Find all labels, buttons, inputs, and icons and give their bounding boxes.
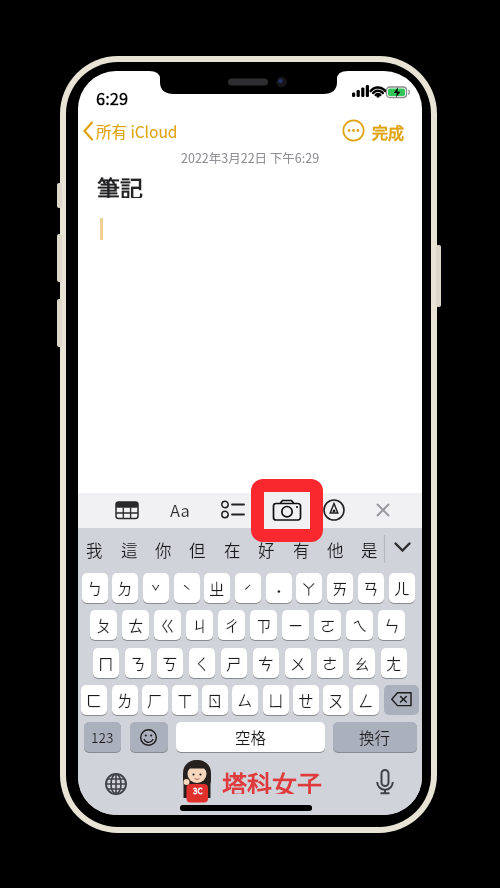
button[interactable]: ㄝ [293, 685, 319, 715]
button[interactable]: ㄐ [186, 610, 213, 640]
staticText: ㄌ [117, 689, 133, 711]
button[interactable] [376, 769, 394, 795]
button[interactable]: ˙ [266, 573, 292, 603]
button[interactable]: ㄈ [81, 685, 107, 715]
staticText: ㄍ [160, 614, 176, 636]
button[interactable] [323, 499, 345, 521]
staticText: ㄝ [298, 689, 314, 711]
button[interactable]: 所有 iCloud [96, 120, 178, 142]
button[interactable]: 123 [84, 722, 121, 752]
staticText: ˇ [151, 580, 161, 602]
staticText: 6:29 [96, 86, 129, 108]
staticText: 123 [91, 727, 114, 747]
button[interactable]: ㄦ [389, 573, 415, 603]
button[interactable]: ㄛ [314, 610, 341, 640]
staticText: ㄔ [224, 614, 240, 636]
button[interactable] [272, 500, 302, 521]
staticText: ㄏ [147, 689, 163, 711]
button[interactable]: ㄑ [189, 648, 215, 678]
staticText: 我 [86, 538, 103, 562]
staticText: 2022年3月22日 下午6:29 [181, 148, 320, 166]
button[interactable]: ㄣ [378, 610, 405, 640]
button[interactable]: ㄚ [296, 573, 322, 603]
staticText: ㄎ [162, 652, 178, 674]
button[interactable]: ㄕ [221, 648, 247, 678]
staticText: ˋ [182, 580, 192, 602]
button[interactable] [221, 500, 245, 520]
staticText: ㄖ [207, 689, 223, 711]
button[interactable]: ㄋ [125, 648, 151, 678]
button[interactable]: ㄆ [90, 610, 117, 640]
button[interactable]: ㄩ [263, 685, 289, 715]
button[interactable]: ㄤ [381, 648, 407, 678]
staticText: ㄘ [258, 652, 274, 674]
button[interactable]: ㄖ [202, 685, 228, 715]
staticText: ㄢ [363, 577, 379, 599]
button[interactable] [130, 722, 168, 752]
button[interactable]: ㄠ [349, 648, 375, 678]
button[interactable]: ㄊ [122, 610, 149, 640]
staticText: ㄈ [86, 689, 102, 711]
staticText: Aa [170, 498, 190, 522]
staticText: 好 [258, 538, 275, 562]
button[interactable]: ㄢ [358, 573, 384, 603]
staticText: 所有 iCloud [96, 120, 178, 142]
button[interactable]: ˊ [235, 573, 261, 603]
staticText: ㄉ [117, 577, 133, 599]
button[interactable]: ㄓ [204, 573, 230, 603]
button[interactable]: ㄉ [112, 573, 138, 603]
staticText: 是 [361, 538, 378, 562]
button[interactable]: 換行 [333, 722, 417, 752]
button[interactable]: ㄙ [232, 685, 258, 715]
staticText: 但 [189, 538, 206, 562]
button[interactable]: ㄨ [285, 648, 311, 678]
staticText: ㄋ [130, 652, 146, 674]
staticText: 完成 [372, 120, 405, 142]
staticText: ㄠ [354, 652, 370, 674]
staticText: ㄤ [386, 652, 402, 674]
staticText: 筆記 [97, 170, 143, 198]
button[interactable]: ㄥ [353, 685, 379, 715]
button[interactable]: 空格 [176, 722, 325, 752]
staticText: ㄑ [194, 652, 210, 674]
staticText: ˊ [243, 580, 253, 602]
button[interactable]: ㄇ [93, 648, 119, 678]
button[interactable] [384, 685, 419, 715]
button[interactable] [376, 503, 390, 517]
button[interactable]: ㄅ [82, 573, 108, 603]
staticText: 3C [193, 785, 203, 797]
staticText: 有 [293, 538, 310, 562]
staticText: ˙ [275, 580, 283, 602]
button[interactable]: ㄜ [317, 648, 343, 678]
button[interactable]: ㄔ [218, 610, 245, 640]
button[interactable]: ˇ [143, 573, 169, 603]
button[interactable]: ㄗ [250, 610, 277, 640]
staticText: ㄕ [226, 652, 242, 674]
staticText: ㄡ [328, 689, 344, 711]
button[interactable]: ㄌ [112, 685, 138, 715]
staticText: ㄥ [358, 689, 374, 711]
staticText: ㄞ [332, 577, 348, 599]
button[interactable]: ㄍ [154, 610, 181, 640]
button[interactable]: ㄧ [282, 610, 309, 640]
staticText: ㄇ [98, 652, 114, 674]
button[interactable] [380, 535, 422, 565]
staticText: ㄨ [290, 652, 306, 674]
button[interactable]: ˋ [174, 573, 200, 603]
button[interactable]: ㄎ [157, 648, 183, 678]
staticText: ㄐ [192, 614, 208, 636]
button[interactable]: ㄒ [172, 685, 198, 715]
button[interactable]: ㄞ [327, 573, 353, 603]
button[interactable] [115, 501, 139, 520]
staticText: ㄛ [320, 614, 336, 636]
staticText: ㄟ [352, 614, 368, 636]
button[interactable]: ㄏ [142, 685, 168, 715]
button[interactable]: ㄟ [346, 610, 373, 640]
staticText: 塔科女子 [222, 765, 323, 794]
staticText: ㄧ [288, 614, 304, 636]
button[interactable] [105, 773, 127, 795]
staticText: 空格 [235, 726, 267, 748]
button[interactable] [342, 119, 365, 142]
button[interactable]: ㄡ [323, 685, 349, 715]
button[interactable]: ㄘ [253, 648, 279, 678]
